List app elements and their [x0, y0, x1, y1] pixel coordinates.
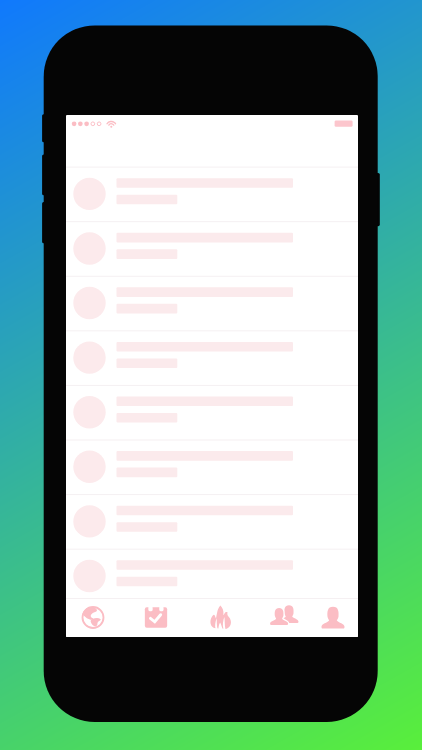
button[interactable]: Contact: [66, 222, 358, 277]
button[interactable]: Contact: [66, 442, 358, 497]
button[interactable]: Contact: [66, 607, 358, 637]
button[interactable]: Friends: [258, 598, 310, 637]
button[interactable]: Contact: [66, 277, 358, 332]
button[interactable]: Contact: [66, 167, 358, 222]
button[interactable]: Explore: [67, 598, 119, 637]
button[interactable]: Contact: [66, 552, 358, 607]
button[interactable]: Contact: [66, 387, 358, 442]
button[interactable]: Profile: [307, 598, 358, 637]
button[interactable]: Contact: [66, 497, 358, 552]
button[interactable]: Events: [130, 598, 182, 637]
button[interactable]: Contact: [66, 332, 358, 387]
button[interactable]: Trending: [195, 598, 247, 637]
